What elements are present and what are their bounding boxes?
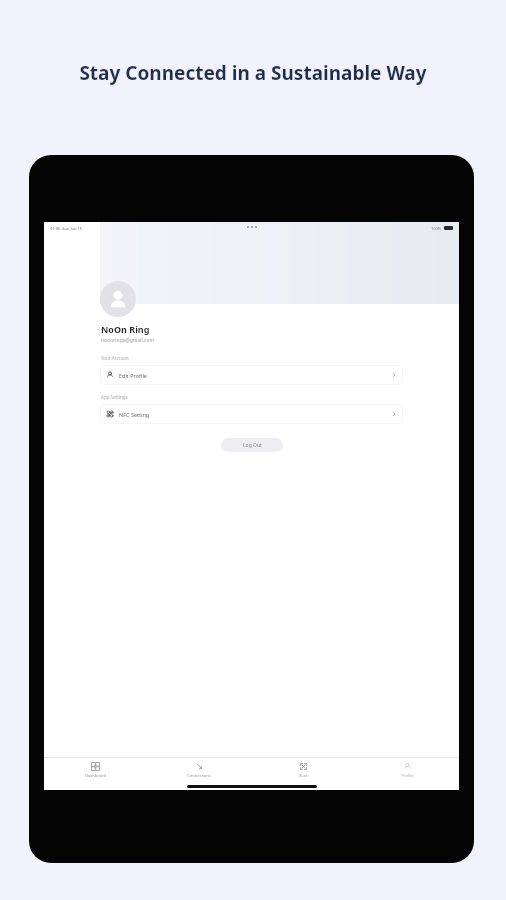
staticText: Connections [187, 773, 211, 778]
staticText: Stay Connected in a Sustainable Way [0, 60, 506, 86]
button[interactable]: Connections [147, 758, 251, 782]
staticText: Your Account [101, 355, 129, 361]
staticText: noonrings@gmail.com [101, 337, 155, 344]
button[interactable]: Scan [251, 758, 355, 782]
staticText: 100% [431, 226, 442, 231]
staticText: Log Out [243, 442, 262, 449]
staticText: 01:06 Sun Jun 15 [50, 226, 83, 231]
staticText: NFC Setting [119, 411, 150, 418]
staticText: Profile [401, 773, 414, 778]
button[interactable]: Dashboard [44, 758, 147, 782]
staticText: Scan [299, 773, 308, 778]
button[interactable]: Log Out [221, 438, 283, 452]
button[interactable]: NFC Setting [100, 404, 403, 424]
button[interactable]: Profile [355, 758, 459, 782]
staticText: App Settings [101, 394, 128, 400]
staticText: NoOn Ring [101, 323, 150, 335]
staticText: Edit Profile [119, 372, 147, 379]
button[interactable]: Edit Profile [100, 365, 403, 385]
staticText: Dashboard [85, 773, 106, 778]
